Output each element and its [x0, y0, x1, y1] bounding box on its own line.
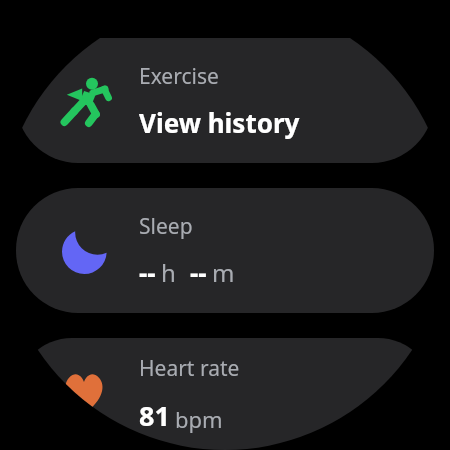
button[interactable]: Exercise [16, 38, 434, 163]
other: Exercise [62, 77, 110, 125]
button[interactable]: Sleep [16, 188, 434, 313]
staticText: Exercise [139, 62, 219, 91]
staticText: m [212, 256, 235, 289]
staticText: Heart rate [139, 354, 240, 383]
staticText: bpm [175, 404, 223, 434]
other: Heart rate [62, 372, 106, 416]
other: Sleep [62, 227, 109, 274]
button[interactable]: Heart rate [16, 338, 434, 450]
staticText: h [161, 256, 176, 289]
staticText: -- [190, 255, 207, 290]
staticText: Sleep [139, 212, 193, 241]
staticText: View history [139, 105, 300, 140]
staticText: 81 [139, 397, 170, 434]
staticText: -- [139, 255, 156, 290]
